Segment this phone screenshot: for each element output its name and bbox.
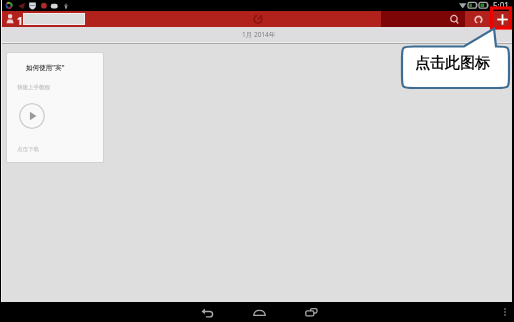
button[interactable]: Account	[5, 13, 15, 25]
staticText: 如何使用"宾"	[26, 63, 65, 72]
button[interactable]: Home	[236, 302, 282, 322]
button[interactable]: Search	[442, 11, 466, 27]
staticText: 点击此图标	[415, 54, 490, 73]
button[interactable]: Back	[184, 302, 230, 322]
staticText: 5:01	[493, 0, 509, 11]
staticText: 1月 2014年	[242, 30, 276, 39]
staticText: 快速上手教程	[17, 84, 50, 91]
button[interactable]: Timer	[252, 13, 264, 25]
button[interactable]: Play video	[19, 103, 45, 129]
button[interactable]: 如何使用"宾"	[7, 53, 103, 162]
staticText: 点击下载	[17, 146, 39, 153]
button[interactable]: Add	[490, 11, 514, 27]
staticText: 1	[17, 14, 23, 28]
button[interactable]: Recent apps	[288, 302, 334, 322]
button[interactable]: More options	[502, 306, 508, 318]
button[interactable]: Refresh	[466, 11, 490, 27]
